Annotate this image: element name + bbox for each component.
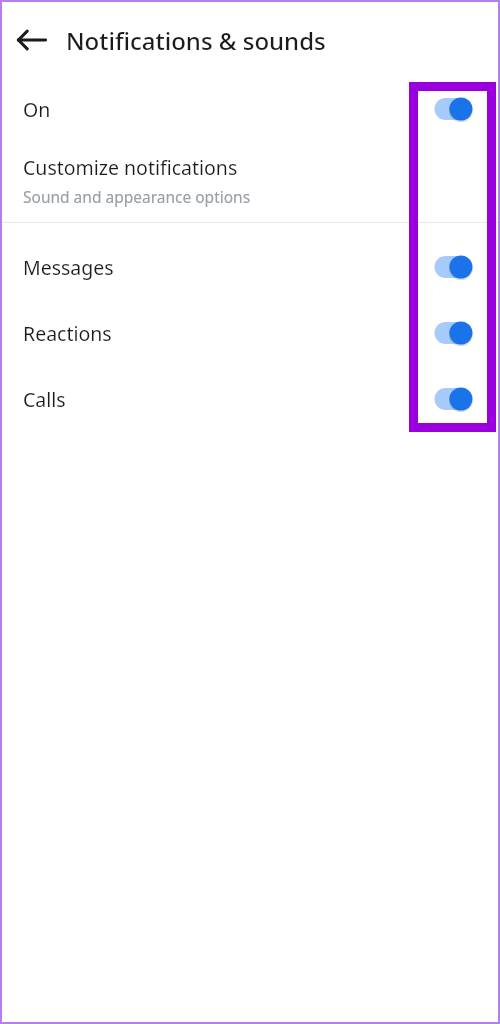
button[interactable]: On xyxy=(0,80,500,138)
staticText: Customize notifications xyxy=(23,154,238,181)
button[interactable]: Reactions xyxy=(0,300,500,366)
button[interactable]: Back xyxy=(8,16,56,64)
staticText: On xyxy=(23,96,51,123)
button[interactable]: Calls xyxy=(0,366,500,432)
staticText: Reactions xyxy=(23,320,112,347)
button[interactable]: Toggle xyxy=(430,94,478,124)
button[interactable]: Toggle xyxy=(430,252,478,282)
staticText: Messages xyxy=(23,254,114,281)
button[interactable]: Messages xyxy=(0,234,500,300)
staticText: Sound and appearance options xyxy=(23,186,251,207)
staticText: Notifications & sounds xyxy=(66,24,326,57)
button[interactable]: Customize notifications xyxy=(0,138,500,222)
button[interactable]: Toggle xyxy=(430,384,478,414)
button[interactable]: Toggle xyxy=(430,318,478,348)
staticText: Calls xyxy=(23,386,66,413)
